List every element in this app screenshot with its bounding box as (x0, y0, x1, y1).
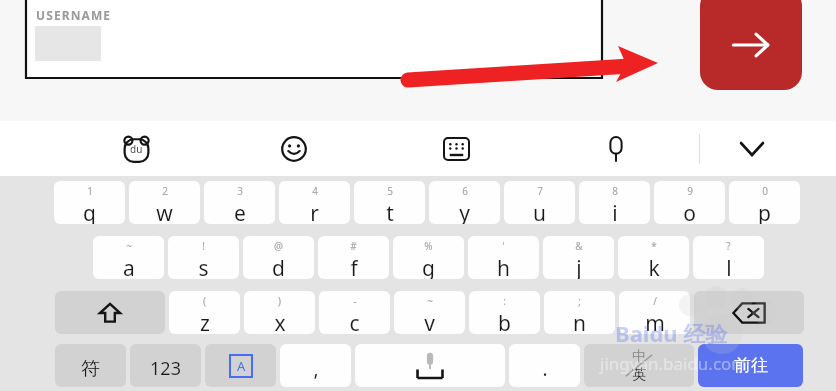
button[interactable]: 123 (130, 344, 201, 387)
staticText: # (350, 239, 357, 253)
button[interactable] (25, 0, 603, 79)
staticText: 1 (87, 184, 93, 198)
button[interactable]: 前往 (698, 344, 803, 387)
staticText: q (83, 199, 96, 224)
button[interactable]: Submit (700, 0, 802, 90)
staticText: & (575, 239, 583, 253)
staticText: 6 (462, 184, 468, 198)
staticText: v (424, 309, 435, 334)
button[interactable]: 中 (584, 344, 694, 387)
staticText: . (542, 356, 548, 382)
staticText: % (424, 239, 433, 253)
staticText: ~ (126, 239, 132, 253)
staticText: z (200, 309, 210, 334)
button[interactable]: 9 (654, 181, 725, 224)
staticText: 英 (632, 366, 646, 384)
staticText: 123 (150, 356, 181, 381)
button[interactable]: & (543, 236, 614, 279)
button[interactable]: - (319, 291, 390, 334)
staticText: ! (202, 239, 205, 253)
other: Language A (230, 355, 252, 377)
button[interactable]: 8 (579, 181, 650, 224)
button[interactable]: 2 (129, 181, 200, 224)
button[interactable]: Keyboard layout (430, 123, 482, 175)
other: Space (355, 344, 505, 387)
staticText: a (123, 254, 135, 279)
staticText: t (386, 199, 394, 224)
button[interactable]: ! (168, 236, 239, 279)
staticText: ) (278, 294, 281, 308)
staticText: b (498, 309, 511, 334)
button[interactable]: Backspace (694, 291, 804, 334)
button[interactable]: Space (355, 344, 505, 387)
staticText: A (237, 357, 246, 375)
button[interactable]: 0 (729, 181, 800, 224)
button[interactable]: ( (169, 291, 240, 334)
button[interactable]: ~ (93, 236, 164, 279)
staticText: w (156, 199, 173, 224)
button[interactable]: 中 (584, 344, 694, 387)
button[interactable]: / (619, 291, 690, 334)
staticText: l (726, 254, 732, 279)
staticText: 2 (162, 184, 168, 198)
button[interactable]: 1 (54, 181, 125, 224)
staticText: 8 (612, 184, 618, 198)
staticText: / (653, 294, 657, 308)
staticText: o (683, 199, 696, 224)
staticText: USERNAME (36, 7, 112, 23)
staticText: - (353, 294, 357, 308)
staticText: c (349, 309, 360, 334)
button[interactable]: . (509, 344, 580, 387)
button[interactable]: , (280, 344, 351, 387)
button[interactable]: : (469, 291, 540, 334)
staticText: p (758, 199, 771, 224)
staticText: s (198, 254, 209, 279)
button[interactable]: 3 (204, 181, 275, 224)
staticText: u (533, 199, 546, 224)
staticText: 4 (312, 184, 318, 198)
button[interactable]: Baidu input (110, 123, 162, 175)
staticText: du (130, 142, 143, 156)
staticText: f (350, 254, 358, 279)
button[interactable]: 前往 (698, 344, 803, 387)
button[interactable]: ; (544, 291, 615, 334)
button[interactable]: 6 (429, 181, 500, 224)
staticText: e (234, 199, 246, 224)
button[interactable]: ~ (394, 291, 465, 334)
other: Backspace (694, 291, 804, 334)
staticText: ? (726, 239, 731, 253)
staticText: ' (502, 239, 505, 253)
button[interactable]: 5 (354, 181, 425, 224)
button[interactable]: 符 (55, 344, 126, 387)
staticText: 前往 (734, 355, 768, 376)
staticText: g (422, 254, 435, 279)
staticText: r (310, 199, 319, 224)
button[interactable]: Voice input (590, 123, 642, 175)
button[interactable]: * (618, 236, 689, 279)
staticText: d (272, 254, 285, 279)
button[interactable]: # (318, 236, 389, 279)
staticText: Baidu 经验 (615, 318, 728, 348)
staticText: 5 (387, 184, 393, 198)
button[interactable]: Shift (55, 291, 165, 334)
staticText: 中 (632, 348, 646, 366)
staticText: m (645, 309, 665, 334)
button[interactable]: ' (468, 236, 539, 279)
staticText: ( (203, 294, 206, 308)
staticText: ; (578, 294, 581, 308)
button[interactable]: % (393, 236, 464, 279)
button[interactable]: 4 (279, 181, 350, 224)
staticText: j (576, 254, 582, 279)
button[interactable]: Hide keyboard (726, 123, 778, 175)
button[interactable]: ? (693, 236, 764, 279)
staticText: @ (274, 239, 283, 253)
staticText: 3 (237, 184, 243, 198)
button[interactable]: ) (244, 291, 315, 334)
staticText: i (612, 199, 618, 224)
button[interactable]: 7 (504, 181, 575, 224)
staticText: h (497, 254, 510, 279)
button[interactable]: Emoji (268, 123, 320, 175)
button[interactable]: Language A (205, 344, 276, 387)
button[interactable]: @ (243, 236, 314, 279)
staticText: jingyan.baidu.com (600, 352, 748, 375)
